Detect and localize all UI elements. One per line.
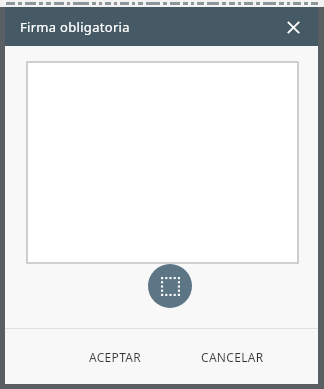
button[interactable]: ACEPTAR	[65, 336, 165, 378]
staticText: Firma obligatoria	[20, 18, 130, 36]
staticText: ACEPTAR	[89, 349, 142, 365]
button[interactable]: CANCELAR	[177, 336, 287, 378]
button[interactable]: Borrar firma	[148, 264, 192, 308]
staticText: CANCELAR	[201, 349, 264, 365]
button[interactable]: Área de firma	[27, 62, 298, 263]
button[interactable]: Cerrar	[276, 10, 310, 44]
